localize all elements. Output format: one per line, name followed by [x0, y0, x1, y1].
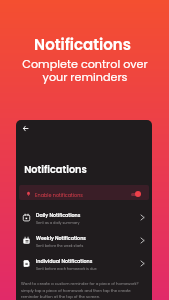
staticText: Complete control over your reminders [22, 56, 148, 84]
staticText: Individual Notifications [36, 258, 93, 265]
button[interactable]: Weekly Notifications [16, 228, 152, 251]
button[interactable]: Daily Notifications [16, 205, 152, 228]
staticText: Sent before each homework is due [36, 266, 97, 271]
staticText: Want to create a custom reminder for a p… [21, 281, 147, 299]
button[interactable]: Individual Notifications [16, 251, 152, 274]
staticText: Daily Notifications [36, 212, 81, 219]
staticText: Sent before the week starts [36, 243, 84, 248]
staticText: Enable notifications [35, 192, 83, 199]
staticText: Notifications [34, 34, 131, 55]
staticText: Notifications [24, 163, 87, 177]
staticText: Weekly Notifications [36, 235, 86, 242]
button[interactable]: Back [19, 122, 32, 135]
button[interactable]: Enable notifications [19, 185, 149, 200]
staticText: Sent as a daily summary [36, 220, 80, 225]
